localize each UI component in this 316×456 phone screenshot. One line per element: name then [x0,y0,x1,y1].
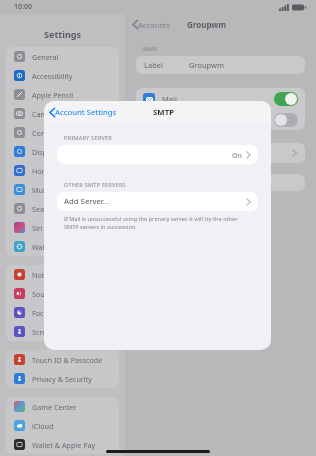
button[interactable] [136,143,305,163]
staticText: Add Server... [64,196,110,207]
staticText: Multitasking [32,185,74,195]
button[interactable]: Notes [136,109,305,130]
staticText: IMAP [143,45,158,53]
button[interactable]: Screen Time [6,322,119,341]
button[interactable]: Add Server... [57,192,258,211]
staticText: Label [144,60,163,70]
staticText: Camera [32,109,59,119]
staticText: Focus [32,308,52,318]
staticText: Sounds [32,289,58,299]
button[interactable]: Mail [136,88,305,109]
staticText: Display & Bright [32,147,87,157]
button[interactable]: On [57,145,258,164]
button[interactable]: Privacy & Security [6,369,119,388]
staticText: On [232,150,243,160]
button[interactable]: Sounds [6,284,119,303]
staticText: Control Centre [32,128,82,138]
button[interactable]: Accessibility [6,66,119,85]
staticText: Touch ID & Passcode [32,355,103,365]
button[interactable]: Control Centre [6,123,119,142]
button[interactable]: iCloud [6,416,119,435]
button[interactable]: Notes toggle [274,113,298,127]
button[interactable]: Notifications [6,265,119,284]
staticText: Accessibility [32,71,73,81]
button[interactable]: Siri [6,218,119,237]
staticText: Mail [162,94,177,104]
staticText: SMTP [153,107,174,118]
staticText: Groupwm [187,19,226,30]
staticText: Game Center [32,402,77,412]
button[interactable]: Apple Pencil [6,85,119,104]
staticText: Search [32,204,55,214]
button[interactable]: Wallet & Apple Pay [6,435,119,454]
staticText: 10:00 [14,2,32,12]
staticText: Accounts [138,20,171,30]
button[interactable]: Label [136,56,305,74]
button[interactable]: Game Center [6,397,119,416]
button[interactable]: General [6,47,119,66]
staticText: Account Settings [55,107,117,118]
button[interactable]: Search [6,199,119,218]
staticText: Siri [32,223,43,233]
button[interactable] [136,174,305,191]
staticText: Groupwm [189,60,224,70]
button[interactable]: Account Settings [48,107,117,118]
staticText: Wallet & Apple Pay [32,440,96,450]
staticText: Notifications [32,270,75,280]
staticText: If Mail is unsuccessful using the primar… [64,215,251,231]
staticText: iCloud [32,421,54,431]
button[interactable]: Focus [6,303,119,322]
staticText: Apple Pencil [32,90,74,100]
button[interactable]: Touch ID & Passcode [6,350,119,369]
staticText: Privacy & Security [32,374,92,384]
staticText: Screen Time [32,327,74,337]
staticText: OTHER SMTP SERVERS [64,181,126,189]
staticText: Wallpaper [32,242,67,252]
button[interactable]: Wallpaper [6,237,119,256]
button[interactable]: Home Screen [6,161,119,180]
button[interactable]: Accounts [131,19,171,30]
staticText: Settings [0,28,125,40]
staticText: Home Screen [32,166,78,176]
button[interactable]: Multitasking [6,180,119,199]
staticText: PRIMARY SERVER [64,134,112,142]
button[interactable]: Display & Bright [6,142,119,161]
button[interactable]: Mail toggle [274,92,298,106]
button[interactable]: Camera [6,104,119,123]
staticText: General [32,52,59,62]
